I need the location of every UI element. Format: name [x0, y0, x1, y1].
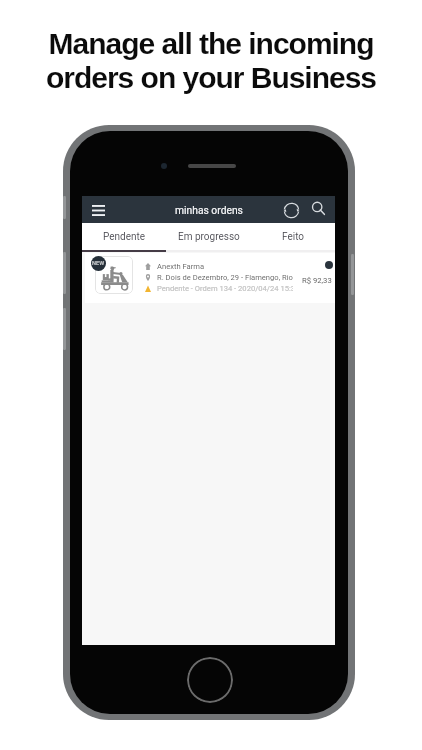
button[interactable]: Em progresso	[167, 223, 251, 250]
staticText: Pendente	[103, 231, 146, 243]
button[interactable]: Refresh	[279, 198, 303, 222]
button[interactable]: Pendente	[82, 223, 167, 250]
staticText: minhas ordens	[175, 204, 243, 216]
button[interactable]: Feito	[251, 223, 335, 250]
staticText: Anexth Farma	[157, 262, 205, 271]
staticText: Em progresso	[178, 231, 240, 243]
staticText: R$ 92,33	[302, 276, 332, 285]
button[interactable]: Search	[306, 196, 330, 220]
staticText: R. Dois de Dezembro, 29 - Flamengo, Rio …	[157, 273, 293, 282]
staticText: Manage all the incoming orders on your B…	[0, 27, 422, 95]
staticText: Feito	[282, 231, 305, 243]
button[interactable]: Menu	[86, 198, 110, 222]
button[interactable]: Anexth Farma	[85, 253, 335, 303]
staticText: NEW	[92, 260, 105, 267]
staticText: Pendente - Ordem 134 - 2020/04/24 15:30	[157, 284, 293, 293]
